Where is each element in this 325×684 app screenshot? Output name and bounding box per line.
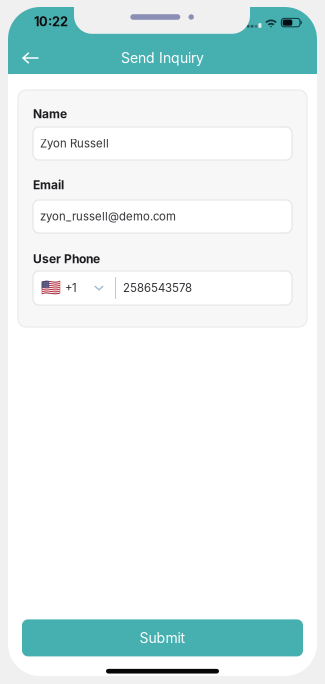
button[interactable]: Select country code xyxy=(33,271,115,304)
staticText: 10:22 xyxy=(34,14,68,29)
staticText: 🇺🇸 xyxy=(41,279,61,297)
button[interactable]: Back xyxy=(8,41,53,75)
staticText: Name xyxy=(33,107,67,121)
staticText: 2586543578 xyxy=(123,281,192,295)
staticText: Submit xyxy=(139,629,185,646)
staticText: +1 xyxy=(65,281,77,295)
staticText: zyon_russell@demo.com xyxy=(40,210,176,223)
staticText: Zyon Russell xyxy=(40,137,109,150)
button[interactable]: Submit xyxy=(22,619,303,656)
staticText: Email xyxy=(33,178,64,192)
staticText: User Phone xyxy=(33,252,100,266)
staticText: Send Inquiry xyxy=(121,49,204,66)
